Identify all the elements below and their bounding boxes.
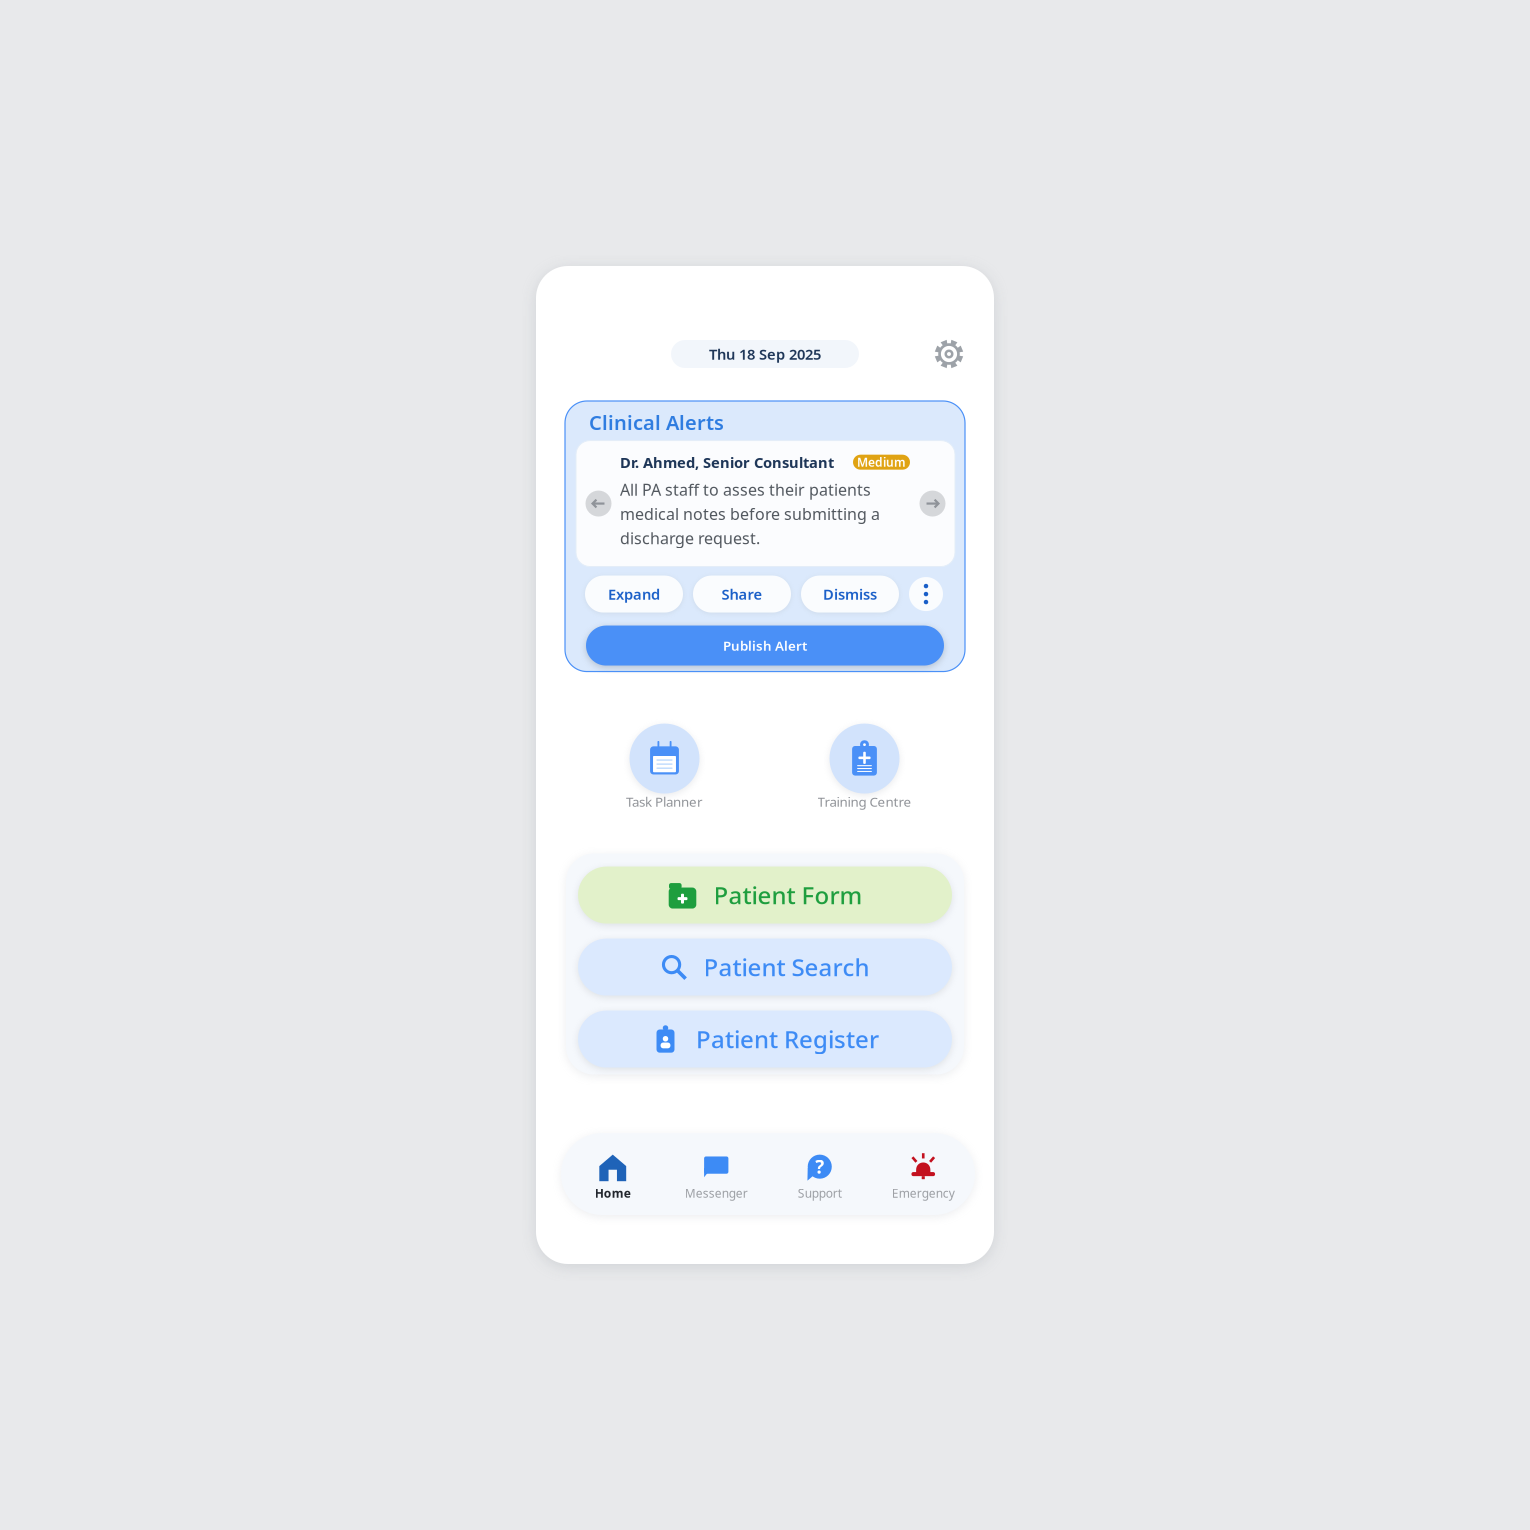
- button[interactable]: More options: [909, 577, 943, 611]
- button[interactable]: Thu 18 Sep 2025: [671, 340, 859, 368]
- button[interactable]: Patient Form: [578, 867, 952, 924]
- staticText: Medium: [857, 454, 906, 470]
- staticText: Clinical Alerts: [589, 409, 724, 436]
- button[interactable]: Emergency: [871, 1141, 975, 1201]
- staticText: Thu 18 Sep 2025: [709, 344, 821, 364]
- staticText: Dismiss: [823, 584, 877, 604]
- staticText: ?: [815, 1154, 824, 1179]
- staticText: Support: [798, 1185, 842, 1201]
- staticText: Patient Search: [703, 951, 869, 983]
- staticText: Home: [595, 1185, 631, 1201]
- staticText: Expand: [608, 584, 660, 604]
- button[interactable]: ?: [768, 1141, 871, 1201]
- staticText: Dr. Ahmed, Senior Consultant: [620, 452, 834, 472]
- button[interactable]: Share: [693, 576, 791, 613]
- button[interactable]: Task Planner: [599, 724, 729, 817]
- button[interactable]: Home: [561, 1141, 664, 1201]
- staticText: Publish Alert: [723, 637, 807, 654]
- staticText: Messenger: [685, 1185, 748, 1201]
- button[interactable]: Messenger: [664, 1141, 768, 1201]
- button[interactable]: Publish Alert: [586, 626, 944, 666]
- staticText: Patient Form: [713, 879, 862, 911]
- button[interactable]: Patient Register: [578, 1011, 952, 1068]
- staticText: Training Centre: [817, 793, 911, 810]
- staticText: Emergency: [892, 1185, 955, 1201]
- staticText: Patient Register: [696, 1023, 879, 1055]
- button[interactable]: Settings: [930, 335, 968, 373]
- staticText: Share: [721, 584, 762, 604]
- button[interactable]: Dismiss: [801, 576, 899, 613]
- staticText: Task Planner: [626, 793, 703, 810]
- button[interactable]: Next alert: [919, 491, 945, 517]
- button[interactable]: Training Centre: [799, 724, 929, 817]
- button[interactable]: Previous alert: [585, 491, 611, 517]
- staticText: All PA staff to asses their patients med…: [620, 479, 880, 549]
- button[interactable]: Expand: [585, 576, 683, 613]
- button[interactable]: Patient Search: [578, 939, 952, 996]
